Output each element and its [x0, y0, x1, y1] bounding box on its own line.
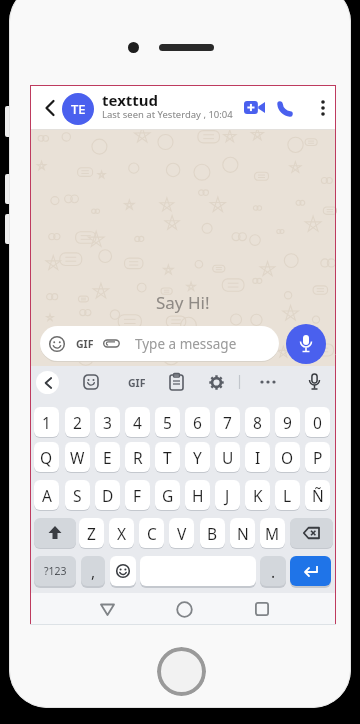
button[interactable]: 4	[125, 407, 150, 437]
button[interactable]	[83, 374, 100, 391]
button[interactable]	[38, 97, 62, 119]
staticText: ?123	[44, 564, 67, 578]
button[interactable]	[157, 647, 206, 696]
button[interactable]: C	[139, 518, 164, 548]
staticText: D	[102, 485, 114, 506]
button[interactable]: 8	[245, 407, 270, 437]
button[interactable]: 5	[155, 407, 180, 437]
button[interactable]: B	[200, 518, 225, 548]
staticText: Type a message	[135, 335, 237, 353]
staticText: O	[281, 447, 294, 468]
button[interactable]: T	[155, 442, 180, 472]
staticText: L	[283, 485, 292, 506]
staticText: 6	[193, 412, 202, 433]
button[interactable]: H	[185, 480, 210, 510]
staticText: Last seen at Yesterday , 10:04	[102, 108, 233, 121]
button[interactable]: E	[95, 442, 120, 472]
staticText: 1	[42, 412, 51, 433]
staticText: 0	[313, 412, 322, 433]
staticText: V	[177, 523, 187, 544]
button[interactable]: .	[260, 556, 286, 586]
button[interactable]: M	[260, 518, 285, 548]
button[interactable]: O	[275, 442, 300, 472]
staticText: GIF	[128, 376, 146, 390]
staticText: ,	[91, 561, 96, 582]
staticText: F	[133, 485, 142, 506]
staticText: N	[237, 523, 249, 544]
button[interactable]: 2	[65, 407, 90, 437]
button[interactable]	[247, 599, 277, 619]
button[interactable]: A	[34, 480, 59, 510]
staticText: C	[147, 523, 157, 544]
button[interactable]: 3	[95, 407, 120, 437]
staticText: X	[117, 523, 127, 544]
button[interactable]: P	[305, 442, 330, 472]
button[interactable]	[242, 97, 267, 118]
button[interactable]: I	[245, 442, 270, 472]
button[interactable]: GIF	[40, 326, 279, 361]
button[interactable]: R	[125, 442, 150, 472]
button[interactable]: N	[230, 518, 255, 548]
button[interactable]: V	[169, 518, 194, 548]
staticText: G	[162, 485, 174, 506]
button[interactable]	[34, 518, 76, 548]
button[interactable]	[169, 373, 184, 391]
staticText: B	[207, 523, 218, 544]
button[interactable]: D	[95, 480, 120, 510]
button[interactable]: W	[65, 442, 90, 472]
button[interactable]: 6	[185, 407, 210, 437]
staticText: 7	[223, 412, 232, 433]
button[interactable]: J	[215, 480, 240, 510]
staticText: 8	[253, 412, 262, 433]
button[interactable]: Q	[34, 442, 59, 472]
button[interactable]: 1	[34, 407, 59, 437]
button[interactable]	[305, 372, 323, 392]
staticText: .	[271, 561, 276, 582]
button[interactable]: 0	[305, 407, 330, 437]
button[interactable]	[290, 518, 333, 548]
button[interactable]: ?123	[34, 556, 76, 586]
staticText: S	[73, 485, 82, 506]
button[interactable]: G	[155, 480, 180, 510]
staticText: P	[313, 447, 323, 468]
button[interactable]	[314, 97, 332, 118]
staticText: R	[133, 447, 143, 468]
button[interactable]: 9	[275, 407, 300, 437]
staticText: A	[42, 485, 52, 506]
button[interactable]	[169, 599, 200, 619]
button[interactable]	[257, 374, 279, 390]
button[interactable]: S	[65, 480, 90, 510]
button[interactable]	[286, 324, 326, 364]
staticText: 4	[133, 412, 142, 433]
button[interactable]: 7	[215, 407, 240, 437]
staticText: M	[265, 523, 280, 544]
button[interactable]: Y	[185, 442, 210, 472]
button[interactable]	[36, 371, 59, 394]
staticText: 2	[73, 412, 82, 433]
button[interactable]: K	[245, 480, 270, 510]
staticText: E	[103, 447, 112, 468]
staticText: GIF	[76, 337, 94, 351]
button[interactable]	[277, 97, 302, 118]
staticText: T	[163, 447, 172, 468]
button[interactable]: U	[215, 442, 240, 472]
staticText: Z	[87, 523, 96, 544]
button[interactable]	[208, 373, 225, 391]
button[interactable]: X	[109, 518, 134, 548]
button[interactable]: TE	[62, 93, 94, 125]
staticText: I	[255, 447, 261, 468]
staticText: Say Hi!	[156, 291, 210, 314]
staticText: 5	[163, 412, 172, 433]
button[interactable]: Z	[79, 518, 104, 548]
staticText: 9	[283, 412, 292, 433]
button[interactable]: Ñ	[305, 480, 330, 510]
button[interactable]: F	[125, 480, 150, 510]
button[interactable]	[92, 599, 122, 619]
button[interactable]	[140, 556, 256, 586]
button[interactable]	[110, 556, 136, 586]
staticText: 3	[103, 412, 112, 433]
button[interactable]	[290, 556, 331, 586]
button[interactable]: GIF	[124, 374, 150, 391]
button[interactable]: ,	[81, 556, 105, 586]
button[interactable]: L	[275, 480, 300, 510]
